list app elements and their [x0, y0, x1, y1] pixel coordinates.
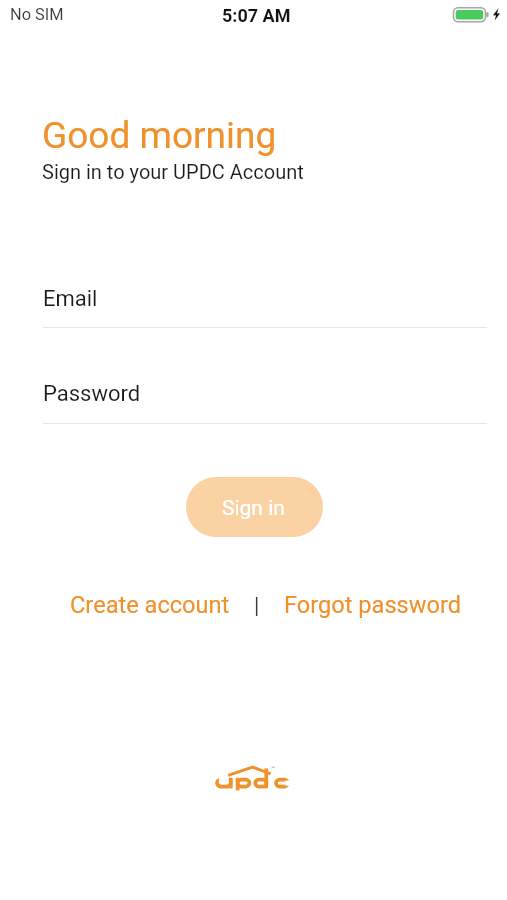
staticText: 5:07 AM — [222, 5, 291, 26]
other: Battery charging — [452, 6, 504, 24]
button[interactable]: Forgot password — [276, 583, 470, 627]
staticText: No SIM — [10, 5, 64, 24]
staticText: Sign in to your UPDC Account — [42, 160, 304, 183]
staticText: Email — [43, 286, 98, 312]
button[interactable]: Email — [43, 280, 487, 328]
staticText: Create account — [70, 591, 230, 619]
staticText: Good morning — [42, 114, 277, 157]
staticText: Sign in — [222, 496, 285, 521]
staticText: Forgot password — [284, 591, 462, 619]
button[interactable]: Sign in — [186, 477, 323, 537]
staticText: Password — [43, 381, 141, 407]
button[interactable]: Password — [43, 375, 487, 424]
staticText: | — [254, 593, 260, 619]
button[interactable]: Create account — [62, 583, 238, 627]
